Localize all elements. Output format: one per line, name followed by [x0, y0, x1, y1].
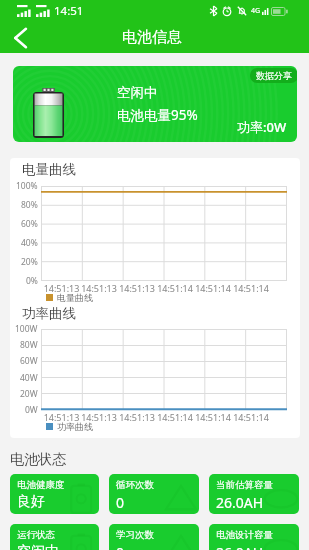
staticText: 14:51:13 — [43, 411, 80, 423]
staticText: 4G — [251, 6, 261, 16]
button[interactable]: Back — [5, 22, 36, 53]
staticText: 电池电量95% — [117, 106, 198, 124]
staticText: 循环次数 — [116, 479, 154, 491]
staticText: 26.0AH — [216, 543, 264, 550]
button[interactable]: 数据分享 — [250, 68, 297, 83]
staticText: 电池设计容量 — [216, 529, 273, 541]
staticText: 14:51:14 — [156, 282, 194, 294]
staticText: 14:51:13 — [43, 282, 80, 294]
button[interactable]: 空闲中 — [13, 66, 297, 142]
staticText: 学习次数 — [116, 529, 154, 541]
button[interactable]: 电池设计容量 — [209, 524, 299, 550]
staticText: 当前估算容量 — [216, 479, 273, 491]
staticText: 数据分享 — [256, 70, 292, 81]
staticText: 14:51:13 — [118, 411, 156, 423]
button[interactable]: 电池健康度 — [10, 474, 99, 514]
button[interactable]: 运行状态 — [10, 524, 99, 550]
staticText: 20% — [21, 256, 38, 268]
staticText: 14:51:14 — [194, 282, 232, 294]
staticText: 100% — [16, 180, 38, 192]
staticText: 功率曲线 — [22, 305, 76, 322]
staticText: 14:51 — [54, 3, 84, 19]
staticText: 14:51:13 — [80, 411, 118, 423]
staticText: 14:51:14 — [232, 411, 270, 423]
staticText: 0 — [116, 543, 125, 550]
staticText: 电量曲线 — [57, 292, 93, 303]
staticText: 0 — [116, 493, 125, 512]
staticText: 60W — [20, 355, 38, 367]
staticText: 40% — [21, 237, 38, 249]
staticText: 40W — [20, 372, 38, 384]
staticText: 功率曲线 — [57, 421, 93, 432]
staticText: 良好 — [17, 493, 45, 511]
staticText: 100W — [15, 323, 38, 335]
staticText: 80W — [20, 339, 38, 351]
staticText: 26.0AH — [216, 493, 264, 512]
staticText: 80% — [21, 199, 38, 211]
staticText: 电池健康度 — [17, 479, 65, 491]
staticText: 电量曲线 — [22, 161, 76, 178]
staticText: 20W — [20, 388, 38, 400]
staticText: 功率:0W — [237, 118, 287, 136]
staticText: 14:51:13 — [118, 282, 156, 294]
button[interactable]: 当前估算容量 — [209, 474, 299, 514]
staticText: 0% — [26, 275, 38, 287]
staticText: 电池状态 — [10, 451, 66, 469]
staticText: 空闲中 — [117, 84, 158, 101]
staticText: 14:51:14 — [194, 411, 232, 423]
staticText: 运行状态 — [17, 529, 55, 541]
staticText: 0W — [25, 404, 38, 416]
staticText: 14:51:13 — [80, 282, 118, 294]
staticText: 60% — [21, 218, 38, 230]
button[interactable]: 学习次数 — [109, 524, 199, 550]
staticText: 14:51:14 — [156, 411, 194, 423]
button[interactable]: 循环次数 — [109, 474, 199, 514]
staticText: 14:51:14 — [232, 282, 270, 294]
staticText: 电池信息 — [122, 28, 182, 47]
staticText: 空闲中 — [17, 543, 59, 550]
